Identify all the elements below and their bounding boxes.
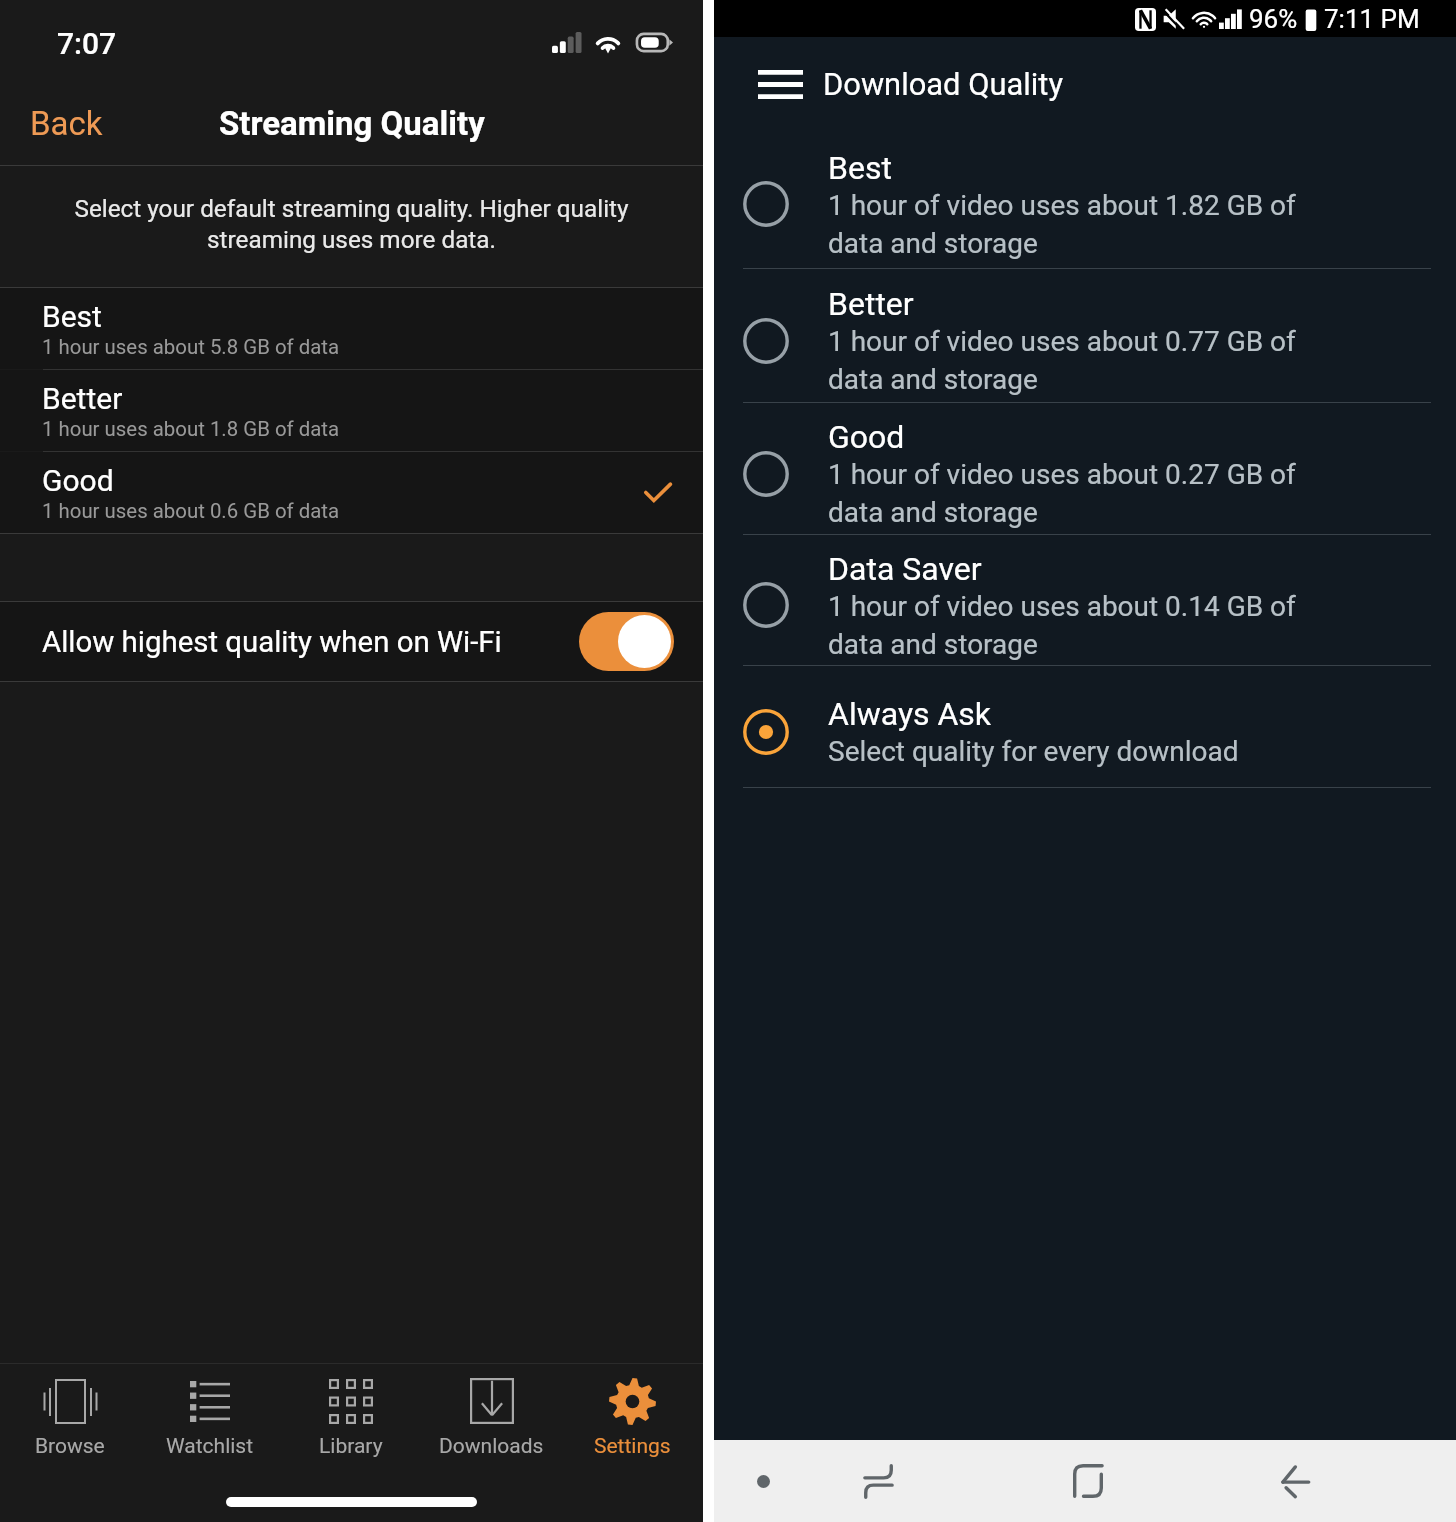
staticText: Best <box>42 299 102 334</box>
staticText: Good <box>828 418 905 456</box>
staticText: Good <box>42 463 114 498</box>
button[interactable]: Better <box>0 370 703 451</box>
button[interactable]: Browse <box>0 1368 140 1468</box>
button[interactable]: Downloads <box>421 1368 562 1468</box>
button[interactable]: Better <box>714 269 1456 402</box>
staticText: Data Saver <box>828 550 982 588</box>
staticText: Settings <box>594 1434 671 1459</box>
button[interactable]: Settings <box>562 1368 703 1468</box>
button[interactable]: Home <box>1060 1453 1116 1509</box>
staticText: Better <box>42 381 123 416</box>
staticText: Downloads <box>439 1434 544 1459</box>
button[interactable]: Open navigation menu <box>758 64 806 104</box>
staticText: Watchlist <box>166 1434 254 1459</box>
staticText: 1 hour of video uses about 0.77 GB of da… <box>828 325 1296 396</box>
button[interactable]: Best <box>714 130 1456 268</box>
staticText: 1 hour uses about 1.8 GB of data <box>42 417 340 441</box>
staticText: Browse <box>35 1434 105 1459</box>
staticText: Streaming Quality <box>219 104 485 143</box>
button[interactable]: Library <box>280 1368 421 1468</box>
button[interactable]: Good <box>0 452 703 533</box>
staticText: 1 hour uses about 0.6 GB of data <box>42 499 340 523</box>
button[interactable]: Back <box>0 92 121 155</box>
staticText: Back <box>30 104 103 143</box>
button[interactable]: Recent apps <box>850 1453 906 1509</box>
button[interactable]: Allow highest quality when on Wi-Fi <box>0 602 703 681</box>
staticText: 1 hour of video uses about 0.14 GB of da… <box>828 590 1296 661</box>
staticText: Best <box>828 149 892 187</box>
staticText: Better <box>828 285 914 323</box>
button[interactable]: Good <box>714 403 1456 534</box>
button[interactable]: Always Ask <box>714 666 1456 787</box>
staticText: 1 hour uses about 5.8 GB of data <box>42 335 340 359</box>
button[interactable]: Data Saver <box>714 535 1456 665</box>
staticText: Select your default streaming quality. H… <box>64 194 639 254</box>
staticText: Download Quality <box>823 66 1064 102</box>
button[interactable]: Back <box>1266 1453 1322 1509</box>
staticText: 7:07 <box>57 26 117 61</box>
staticText: 1 hour of video uses about 0.27 GB of da… <box>828 458 1296 529</box>
button[interactable]: Watchlist <box>140 1368 280 1468</box>
staticText: Always Ask <box>828 695 992 733</box>
staticText: 96% <box>1249 4 1298 34</box>
staticText: 7:11 PM <box>1324 4 1420 34</box>
button[interactable]: Best <box>0 288 703 369</box>
staticText: Library <box>319 1434 383 1459</box>
staticText: 1 hour of video uses about 1.82 GB of da… <box>828 189 1296 260</box>
button[interactable]: More options <box>741 1459 785 1503</box>
staticText: Allow highest quality when on Wi-Fi <box>42 625 502 659</box>
staticText: Select quality for every download <box>828 735 1239 768</box>
